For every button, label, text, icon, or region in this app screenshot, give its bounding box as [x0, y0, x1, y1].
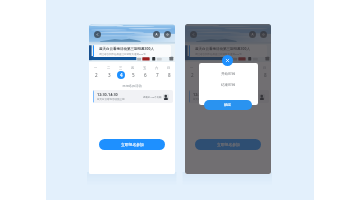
staticText: 三 [119, 66, 123, 70]
staticText: 立即报名参加 [217, 142, 240, 147]
button[interactable]: 12:30-14:30 [189, 90, 269, 103]
button[interactable]: 二 [102, 66, 115, 79]
staticText: 结束时间 [221, 83, 236, 88]
button[interactable]: 三 [211, 66, 223, 79]
staticText: 一 [190, 66, 194, 70]
staticText: 还剩余128个名额 [143, 95, 162, 98]
staticText: 日 [167, 66, 171, 70]
staticText: 2 [191, 72, 194, 78]
staticText: 已报名的活动 [89, 84, 175, 88]
staticText: 蓝天白云看海活动第三期招募300人 [195, 46, 251, 51]
button[interactable]: 六 [151, 66, 163, 79]
button[interactable]: Share [249, 31, 256, 38]
staticText: 2 [95, 72, 98, 78]
button[interactable]: 五 [139, 66, 151, 79]
staticText: 五 [143, 66, 147, 70]
button[interactable]: Camera [164, 31, 171, 38]
staticText: 已报名的活动 [185, 84, 271, 88]
staticText: 二 [107, 66, 111, 70]
button[interactable]: Share [153, 31, 160, 38]
staticText: 蓝天白云看海活动第三期 [97, 98, 125, 101]
button[interactable]: 日 [163, 66, 175, 79]
button[interactable]: 三 [115, 66, 127, 79]
button[interactable]: Back [190, 31, 197, 38]
button[interactable]: Close [222, 55, 233, 66]
button[interactable]: 日 [259, 66, 271, 79]
staticText: 蓝天白云看海活动第三期 [193, 98, 221, 101]
staticText: 蓝天白云看海活动第三期招募300人 [99, 46, 155, 51]
button[interactable]: 确定 [204, 100, 252, 110]
staticText: 6 [144, 72, 147, 78]
staticText: 浙江省台州市仙居县江口游客大道路600号 [195, 52, 242, 55]
staticText: 8 [264, 72, 267, 78]
button[interactable]: 开始时间 [199, 69, 258, 79]
button[interactable]: 一 [185, 66, 198, 79]
staticText: 12:30-14:30 [193, 92, 214, 97]
staticText: 12:30-14:30 [97, 92, 118, 97]
button[interactable]: 结束时间 [199, 79, 258, 91]
button[interactable]: 12:30-14:30 [93, 90, 173, 103]
button[interactable]: 二 [198, 66, 211, 79]
button[interactable]: 一 [89, 66, 102, 79]
staticText: 5 [132, 72, 135, 78]
button[interactable]: 立即报名参加 [195, 139, 261, 150]
button[interactable]: 蓝天白云看海活动第三期招募300人 [93, 45, 171, 57]
button[interactable]: 四 [127, 66, 139, 79]
staticText: 7 [156, 72, 159, 78]
staticText: 六 [155, 66, 159, 70]
button[interactable]: 四 [223, 66, 235, 79]
button[interactable]: 六 [247, 66, 259, 79]
staticText: 浙江省台州市仙居县江口游客大道路600号 [99, 52, 146, 55]
staticText: 开始时间 [221, 72, 236, 77]
staticText: 4 [120, 72, 123, 78]
button[interactable]: 立即报名参加 [99, 139, 165, 150]
staticText: 四 [131, 66, 135, 70]
staticText: 一 [94, 66, 98, 70]
button[interactable]: Camera [260, 31, 267, 38]
staticText: 日 [263, 66, 267, 70]
button[interactable]: 蓝天白云看海活动第三期招募300人 [189, 45, 267, 57]
staticText: 确定 [224, 103, 232, 108]
staticText: 立即报名参加 [121, 142, 144, 147]
staticText: 8 [168, 72, 171, 78]
staticText: 5 [228, 72, 231, 78]
button[interactable]: Back [94, 31, 101, 38]
staticText: 3 [108, 72, 111, 78]
